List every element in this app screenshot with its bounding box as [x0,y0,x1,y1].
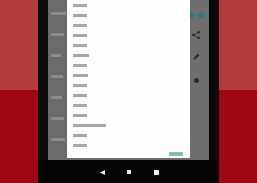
button[interactable] [67,40,190,50]
button[interactable]: Edit [183,50,209,64]
button[interactable] [67,140,190,150]
button[interactable] [67,110,190,120]
button[interactable] [67,20,190,30]
button[interactable] [48,24,70,45]
button[interactable] [67,70,190,80]
button[interactable] [67,130,190,140]
button[interactable]: Share [183,28,209,42]
button[interactable] [67,120,190,130]
button[interactable]: Back [91,161,113,183]
button[interactable] [67,100,190,110]
button[interactable] [48,3,70,24]
button[interactable] [48,87,70,108]
button[interactable]: Settings [183,73,209,87]
button[interactable] [48,66,70,87]
button[interactable] [48,108,70,129]
button[interactable] [67,0,190,10]
button[interactable]: Home [118,161,140,183]
button[interactable] [67,90,190,100]
button[interactable] [166,150,186,158]
button[interactable] [67,30,190,40]
button[interactable]: Recent apps [145,161,167,183]
button[interactable] [67,80,190,90]
button[interactable]: Rating [183,8,209,22]
button[interactable] [48,129,70,150]
button[interactable] [48,45,70,66]
button[interactable] [67,10,190,20]
button[interactable] [67,50,190,60]
button[interactable] [67,60,190,70]
